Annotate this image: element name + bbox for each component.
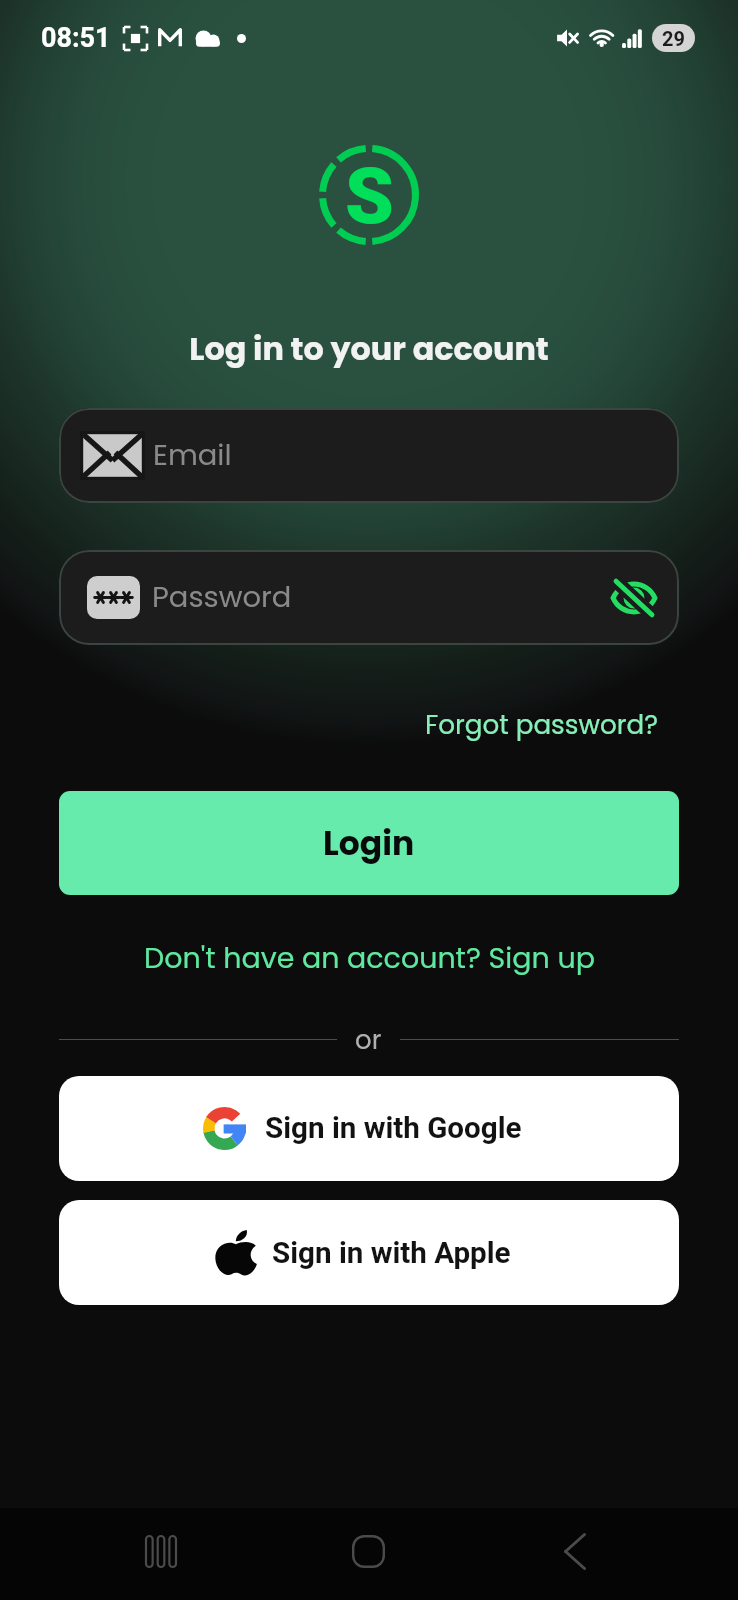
button[interactable]: Back	[535, 1511, 615, 1591]
button[interactable]: Don't have an account? Sign up	[138, 932, 601, 984]
button[interactable]: Show password	[603, 567, 665, 629]
button[interactable]: Password	[59, 550, 679, 645]
button[interactable]: Sign in with Google	[59, 1076, 679, 1181]
staticText: Forgot password?	[425, 706, 658, 743]
button[interactable]: Sign in with Apple	[59, 1200, 679, 1305]
staticText: Sign in with Apple	[272, 1236, 511, 1271]
staticText: Sign in with Google	[265, 1111, 522, 1146]
staticText: 29	[662, 27, 685, 50]
button[interactable]: Login	[59, 791, 679, 895]
staticText: Email	[153, 435, 232, 476]
staticText: Login	[323, 820, 415, 866]
button[interactable]: Forgot password?	[421, 700, 662, 749]
staticText: Don't have an account? Sign up	[144, 938, 595, 978]
staticText: Log in to your account	[189, 327, 549, 372]
staticText: Password	[152, 577, 292, 618]
button[interactable]: Email	[59, 408, 679, 503]
staticText: S	[345, 151, 394, 242]
staticText: 08:51	[41, 22, 111, 54]
button[interactable]: Recents	[121, 1511, 201, 1591]
button[interactable]: Home	[328, 1511, 408, 1591]
staticText: or	[355, 1022, 382, 1056]
